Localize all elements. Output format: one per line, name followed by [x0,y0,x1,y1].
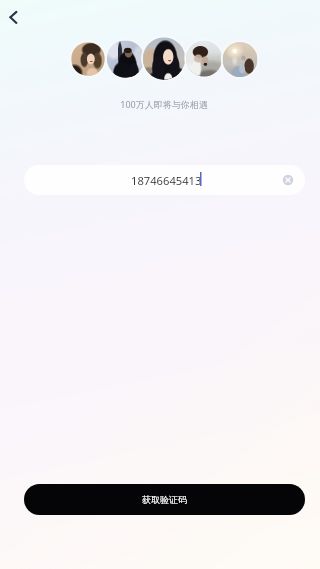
button[interactable]: 获取验证码 [24,484,305,515]
staticText: 100万人即将与你相遇 [120,98,208,110]
staticText: 18746645413 [131,173,202,188]
button[interactable]: 18746645413 [24,165,305,195]
button[interactable]: Clear text [279,171,297,189]
button[interactable]: Back [0,1,30,31]
staticText: 获取验证码 [142,494,187,505]
